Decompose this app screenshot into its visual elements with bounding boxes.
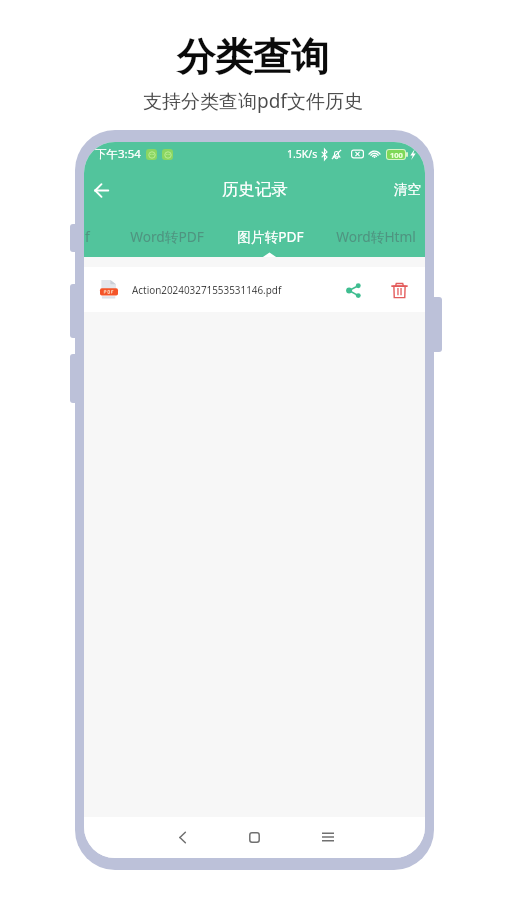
button[interactable]: Back <box>162 817 202 857</box>
button[interactable]: PDF转Gif <box>84 219 111 253</box>
staticText: 100 <box>390 150 403 159</box>
button[interactable]: Word转Html <box>326 219 425 253</box>
staticText: PDF转Gif <box>84 227 90 246</box>
button[interactable]: Share <box>337 274 369 306</box>
staticText: 清空 <box>394 181 421 198</box>
staticText: 历史记录 <box>222 179 288 200</box>
staticText: Action202403271553531146.pdf <box>132 283 282 296</box>
staticText: 支持分类查询pdf文件历史 <box>143 88 363 114</box>
button[interactable]: 清空 <box>384 173 425 206</box>
button[interactable]: Home <box>234 817 274 857</box>
button[interactable]: Back <box>84 173 118 207</box>
staticText: 下午3:54 <box>95 146 141 162</box>
button[interactable]: Delete <box>383 274 415 306</box>
staticText: Word转Html <box>336 227 416 246</box>
staticText: Word转PDF <box>130 227 204 246</box>
button[interactable]: Word转PDF <box>117 219 217 253</box>
button[interactable]: 图片转PDF <box>220 219 320 253</box>
button[interactable]: Recent apps <box>308 817 348 857</box>
staticText: 1.5K/s <box>287 147 318 161</box>
staticText: 图片转PDF <box>237 227 304 246</box>
button[interactable]: Action202403271553531146.pdf <box>84 267 425 312</box>
staticText: 分类查询 <box>177 33 329 81</box>
